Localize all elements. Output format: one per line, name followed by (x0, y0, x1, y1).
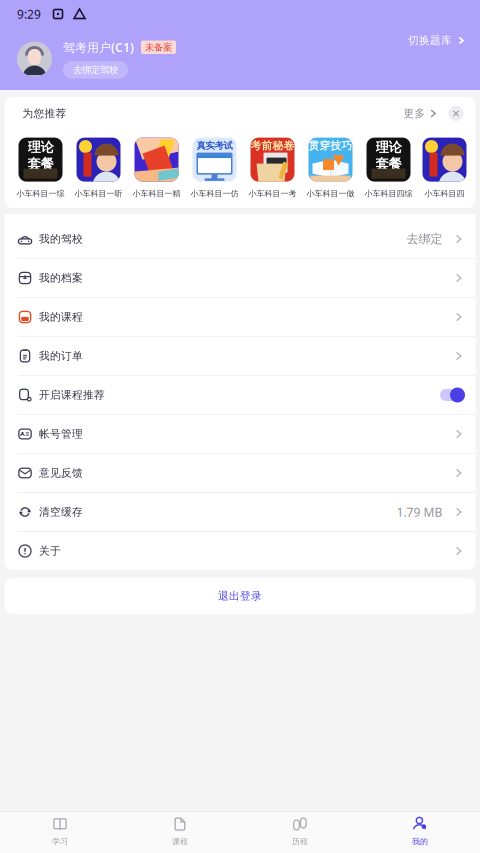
staticText: 套餐 (27, 156, 53, 172)
button[interactable]: 切换题库 (408, 28, 480, 47)
button[interactable]: 意见反馈 (4, 454, 475, 493)
button[interactable]: 帐号管理 (4, 415, 475, 454)
staticText: 退出登录 (218, 589, 262, 602)
button[interactable]: 去绑定驾校 (63, 61, 128, 79)
staticText: 贯穿技巧 (308, 139, 352, 152)
staticText: 考前秘卷 (250, 139, 294, 152)
button[interactable]: 课程 (120, 809, 240, 853)
staticText: 我的订单 (39, 349, 83, 362)
staticText: 我的档案 (39, 271, 83, 284)
button[interactable]: 小车科目四 (422, 138, 466, 198)
button[interactable]: 关于 (4, 532, 475, 570)
staticText: 清空缓存 (39, 505, 83, 518)
staticText: 小车科目四 (424, 189, 464, 198)
staticText: 去绑定驾校 (73, 64, 118, 76)
button[interactable]: 关闭推荐 (448, 106, 463, 121)
staticText: 小车科目一听 (74, 189, 122, 198)
button[interactable]: 历程 (240, 809, 360, 853)
button[interactable]: 我的课程 (4, 298, 475, 337)
button[interactable]: 理论 (364, 138, 412, 198)
staticText: 真实考试 (196, 140, 232, 151)
staticText: 1.79 MB (396, 504, 442, 520)
button[interactable]: 我的档案 (4, 259, 475, 298)
button[interactable]: 考前秘卷 (248, 138, 296, 198)
staticText: 套餐 (375, 156, 401, 172)
staticText: 去绑定 (406, 232, 442, 246)
staticText: 小车科目一精 (132, 189, 180, 198)
button[interactable]: 理论 (16, 138, 64, 198)
staticText: 更多 (403, 107, 425, 120)
button[interactable]: 学习 (0, 809, 120, 853)
staticText: 意见反馈 (39, 466, 83, 479)
staticText: 小车科目一综 (16, 189, 64, 198)
button[interactable]: 退出登录 (4, 578, 475, 614)
staticText: 帐号管理 (39, 427, 83, 440)
button[interactable]: 我的 (360, 809, 480, 853)
staticText: 理论 (27, 139, 53, 156)
staticText: 理论 (375, 139, 401, 156)
button[interactable]: 开启课程推荐 (4, 376, 475, 415)
button[interactable]: 我的驾校 (4, 220, 475, 259)
button[interactable]: 小车科目一精 (132, 138, 180, 198)
button[interactable]: 真实考试 (190, 138, 238, 198)
staticText: 我的 (412, 837, 428, 846)
staticText: 9:29 (17, 6, 41, 22)
staticText: 学习 (52, 837, 68, 846)
staticText: 小车科目一仿 (190, 189, 238, 198)
button[interactable]: 更多 (403, 107, 438, 120)
staticText: 切换题库 (408, 34, 452, 47)
staticText: 小车科目四综 (364, 189, 412, 198)
staticText: 小车科目一考 (248, 189, 296, 198)
staticText: 为您推荐 (22, 107, 66, 120)
staticText: 我的课程 (39, 310, 83, 323)
button[interactable]: 小车科目一听 (74, 138, 122, 198)
staticText: 未备案 (145, 41, 172, 53)
staticText: 开启课程推荐 (39, 388, 105, 401)
staticText: 我的驾校 (39, 232, 83, 245)
button[interactable]: 清空缓存 (4, 493, 475, 532)
staticText: 历程 (292, 837, 308, 846)
button[interactable]: 贯穿技巧 (306, 138, 354, 198)
button[interactable]: 我的订单 (4, 337, 475, 376)
staticText: 驾考用户(C1) (63, 39, 134, 55)
staticText: 课程 (172, 837, 188, 846)
staticText: 关于 (39, 544, 61, 557)
staticText: 小车科目一做 (306, 189, 354, 198)
